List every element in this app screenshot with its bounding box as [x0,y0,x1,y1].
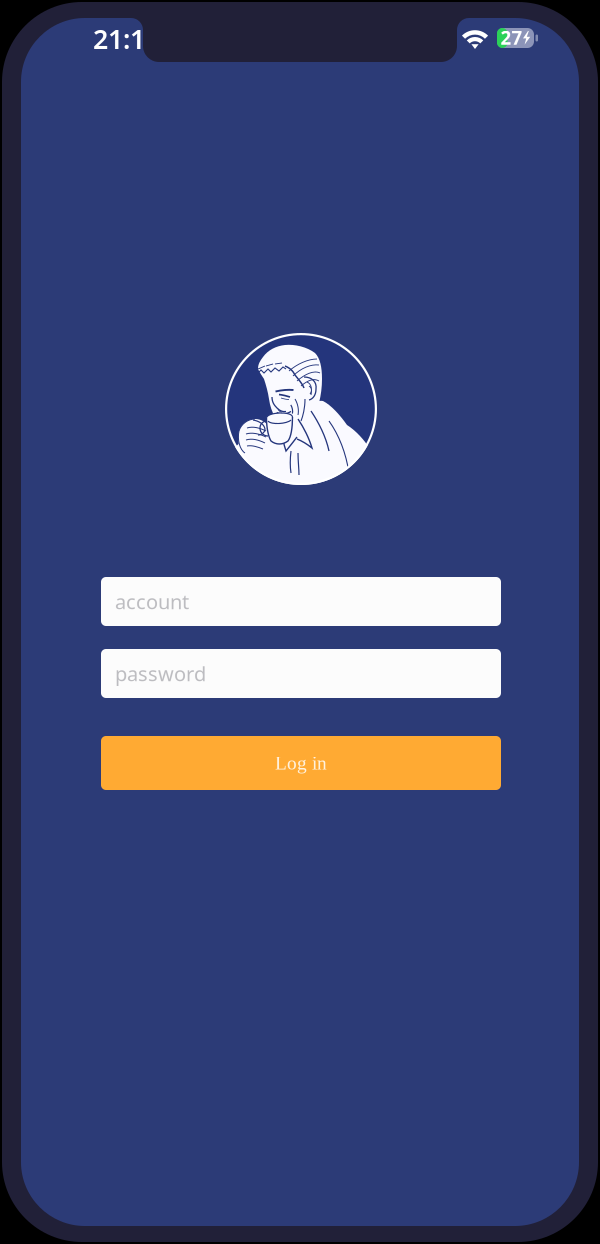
button[interactable]: password [101,649,501,698]
staticText: 27 [500,25,522,50]
staticText: Log in [275,752,327,774]
button[interactable]: Log in [101,736,501,790]
staticText: password [115,660,206,687]
staticText: account [115,588,189,615]
button[interactable]: account [101,577,501,626]
staticText: 21:12 [93,21,160,56]
